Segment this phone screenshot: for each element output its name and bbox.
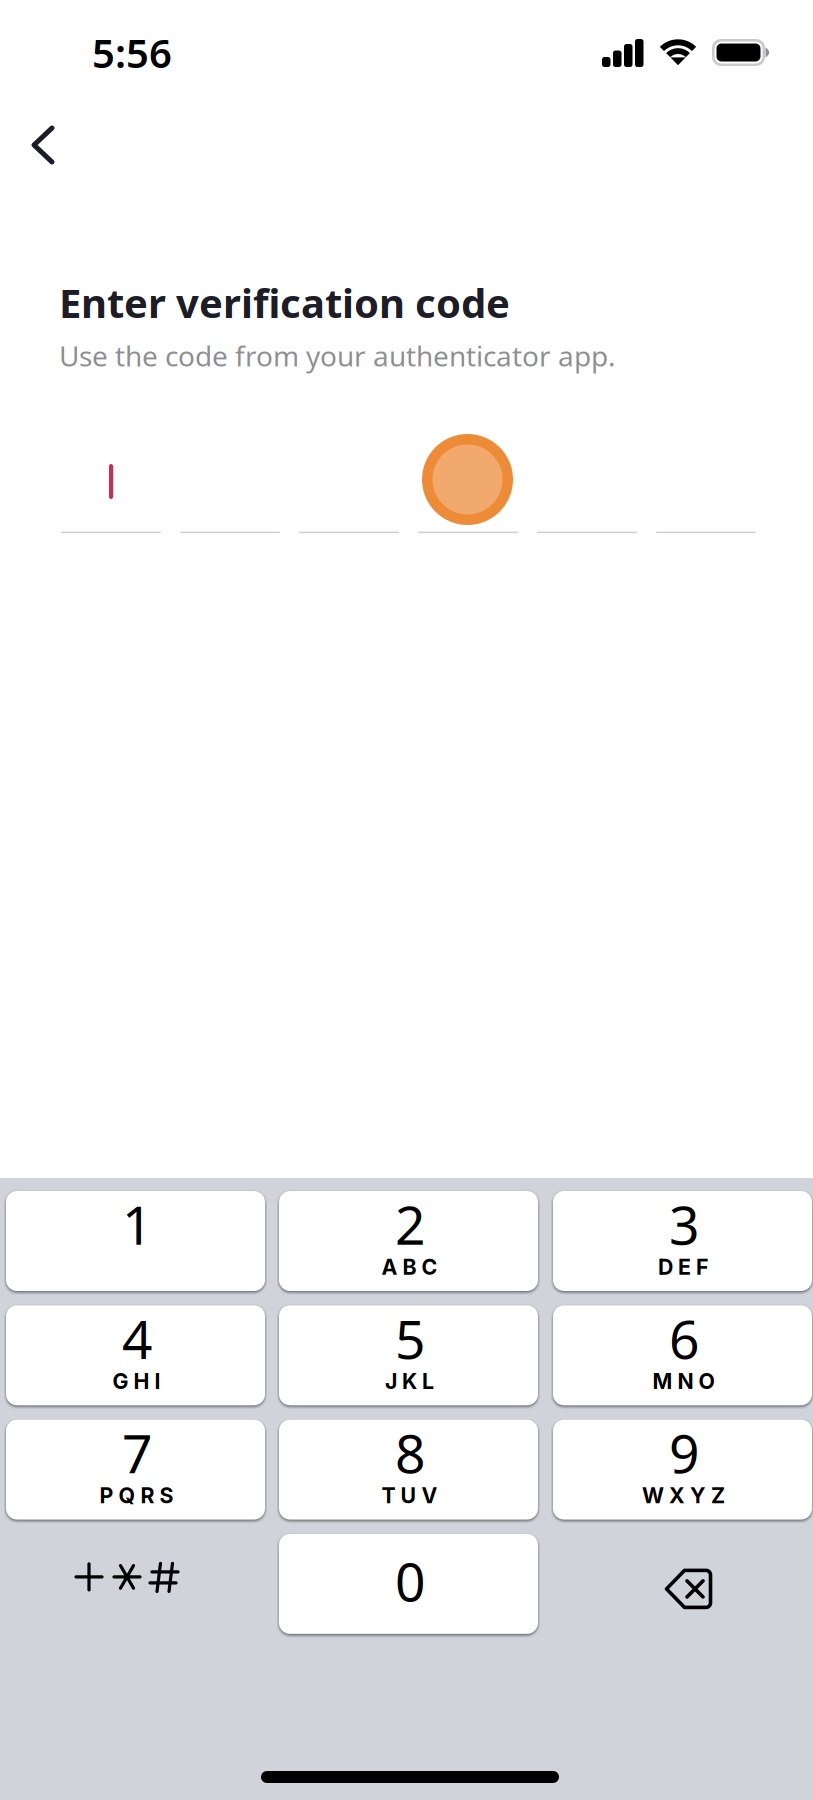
staticText: 2 xyxy=(395,1189,426,1259)
staticText: T U V xyxy=(381,1483,437,1508)
staticText: 7 xyxy=(122,1417,153,1488)
staticText: 3 xyxy=(669,1189,700,1259)
button[interactable]: Delete xyxy=(553,1534,812,1634)
staticText: 5:56 xyxy=(92,26,172,79)
staticText: Use the code from your authenticator app… xyxy=(59,337,616,374)
button[interactable]: Symbols xyxy=(6,1534,265,1634)
button[interactable]: 1 xyxy=(6,1191,265,1291)
staticText: G H I xyxy=(112,1368,160,1394)
button[interactable]: 0 xyxy=(279,1534,538,1634)
staticText: J K L xyxy=(385,1368,434,1394)
staticText: A B C xyxy=(381,1254,437,1280)
staticText: 9 xyxy=(669,1417,700,1488)
button[interactable]: 2 xyxy=(279,1191,538,1291)
staticText: D E F xyxy=(658,1254,709,1280)
button[interactable]: 6 xyxy=(553,1305,812,1405)
staticText: 4 xyxy=(122,1303,153,1374)
button[interactable]: 5 xyxy=(279,1305,538,1405)
staticText: M N O xyxy=(652,1368,714,1394)
button[interactable]: 9 xyxy=(553,1420,812,1520)
button[interactable]: 4 xyxy=(6,1305,265,1405)
button[interactable]: Back xyxy=(1,103,85,187)
button[interactable]: 3 xyxy=(553,1191,812,1291)
staticText: Enter verification code xyxy=(59,276,510,329)
staticText: 8 xyxy=(395,1417,426,1488)
staticText: 5 xyxy=(395,1303,426,1374)
staticText: W X Y Z xyxy=(642,1483,725,1508)
staticText: 6 xyxy=(669,1303,700,1374)
staticText: 1 xyxy=(122,1189,153,1259)
staticText: P Q R S xyxy=(99,1483,173,1508)
button[interactable]: 8 xyxy=(279,1420,538,1520)
staticText: 0 xyxy=(395,1545,426,1616)
button[interactable]: 7 xyxy=(6,1420,265,1520)
